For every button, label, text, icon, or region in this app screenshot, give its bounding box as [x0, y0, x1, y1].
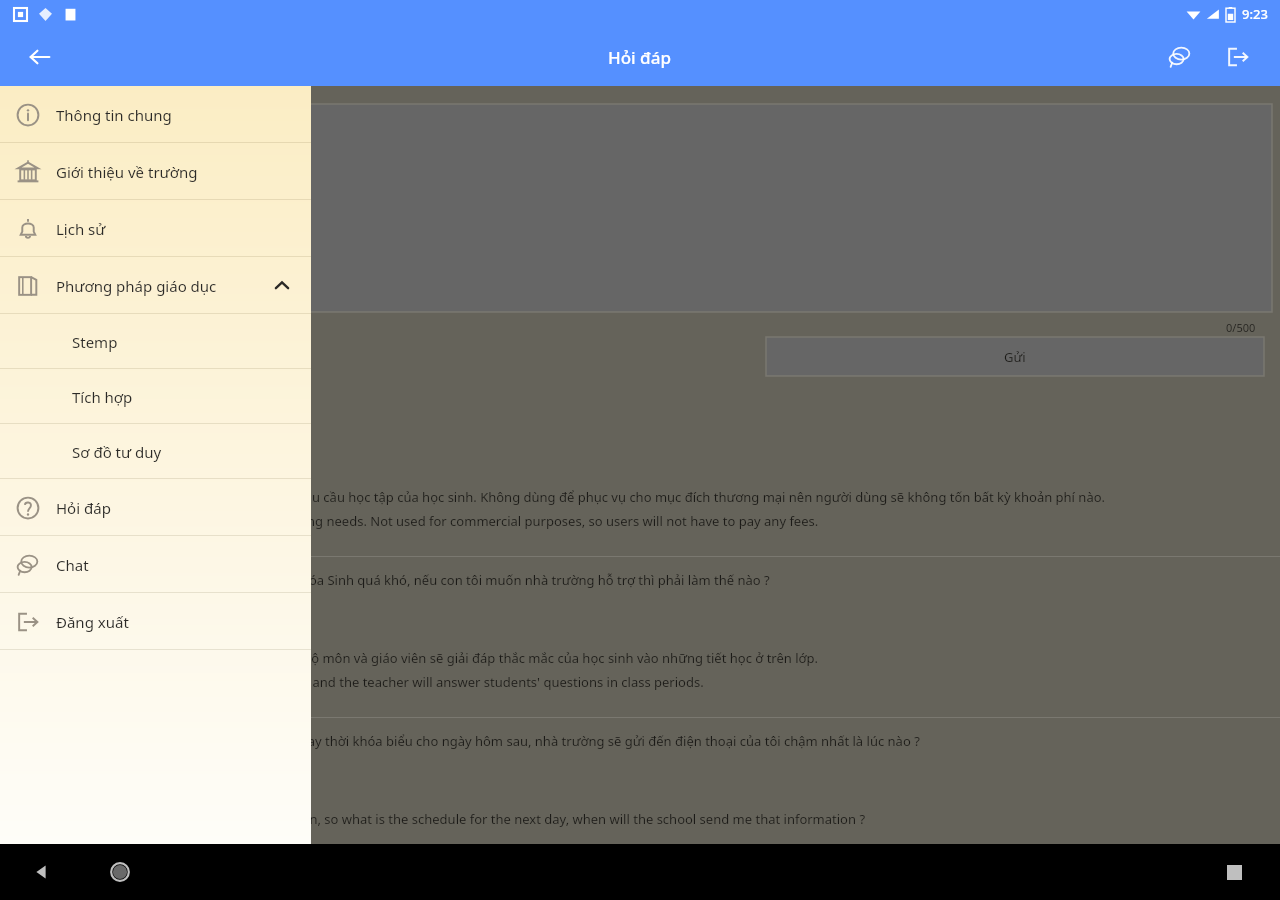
button[interactable]: Sơ đồ tư duy	[0, 424, 311, 479]
staticText: If I want the school to notify me of the…	[20, 810, 866, 828]
staticText: Học sinh có thể trao đổi trực tiếp với g…	[20, 649, 819, 667]
staticText: Stemp	[72, 332, 118, 352]
staticText: Đăng xuất	[56, 612, 129, 632]
staticText: Ứng dụng này có mất phí không ?	[20, 410, 226, 428]
button[interactable]: Thông tin chung	[0, 86, 311, 143]
button[interactable]: Chat	[0, 536, 311, 593]
staticText: Giới thiệu về trường	[56, 162, 198, 182]
button[interactable]: Recent apps	[1214, 852, 1254, 892]
staticText: Tích hợp	[72, 387, 133, 407]
staticText: Students can talk directly to the subjec…	[20, 673, 704, 691]
staticText: Gửi	[1004, 348, 1026, 366]
staticText: Thông tin chung	[56, 105, 172, 125]
button[interactable]: Tích hợp	[0, 369, 311, 424]
button[interactable]: Hỏi đáp	[0, 479, 311, 536]
staticText: Con tôi học yếu môn Toán và các bài tập …	[20, 571, 770, 589]
button[interactable]: Lịch sử	[0, 200, 311, 257]
staticText: Ứng dụng được xây dựng nhằm phục vụ cho …	[20, 488, 1106, 506]
button[interactable]: Back	[22, 852, 62, 892]
staticText: Chat	[56, 555, 89, 575]
button[interactable]: Chat	[1158, 35, 1202, 79]
button[interactable]: Đăng xuất	[0, 593, 311, 650]
button[interactable]: Gửi	[766, 337, 1264, 376]
button[interactable]	[8, 104, 1272, 312]
button[interactable]: Back	[18, 35, 62, 79]
staticText: Trả lời:	[20, 611, 58, 627]
button[interactable]: Home	[100, 852, 140, 892]
staticText: The application is built to serve studen…	[20, 512, 819, 530]
staticText: Hỏi đáp	[608, 46, 672, 69]
staticText: 9:23	[1242, 5, 1268, 23]
staticText: 0/500	[1226, 320, 1256, 335]
button[interactable]: Logout	[1216, 35, 1260, 79]
staticText: Sơ đồ tư duy	[72, 442, 162, 462]
button[interactable]: Stemp	[0, 314, 311, 369]
staticText: Hỏi đáp	[56, 498, 111, 518]
staticText: Phương pháp giáo dục	[56, 276, 217, 296]
staticText: Nếu tôi muốn nhà trường thông báo cho tô…	[20, 732, 920, 750]
button[interactable]: Giới thiệu về trường	[0, 143, 311, 200]
staticText: Lịch sử	[56, 219, 106, 239]
button[interactable]: Phương pháp giáo dục	[0, 257, 311, 314]
